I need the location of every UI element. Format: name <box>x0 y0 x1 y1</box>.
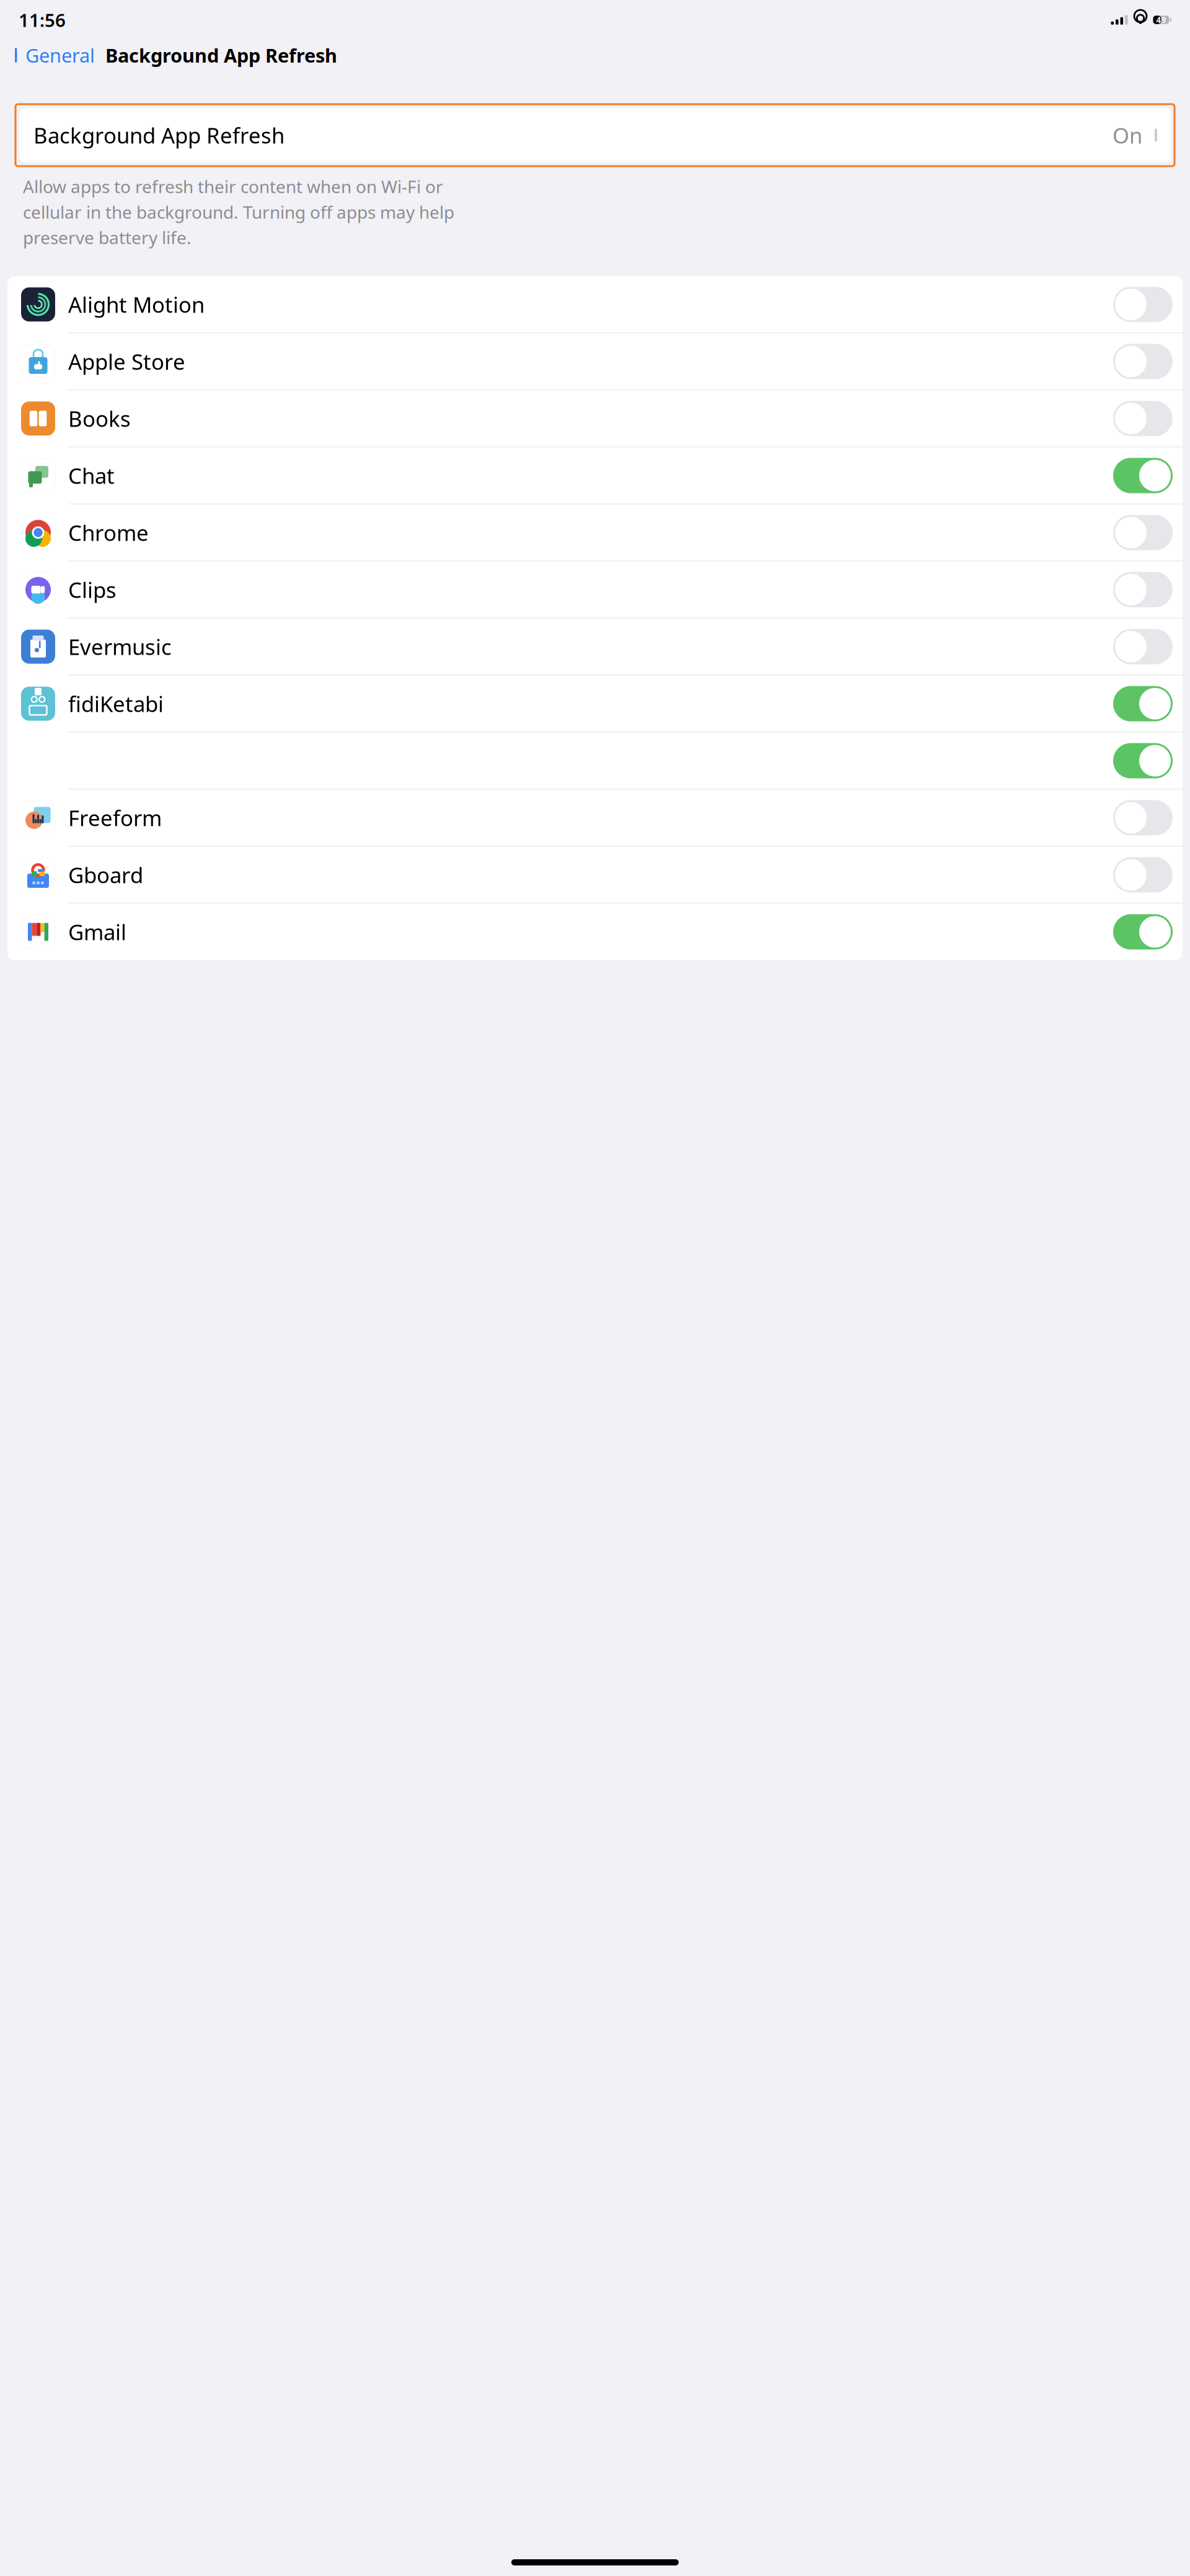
staticText: Freeform <box>68 803 162 832</box>
staticText: Evermusic <box>68 632 172 661</box>
staticText: Chrome <box>68 518 149 547</box>
button[interactable]: General <box>12 39 95 71</box>
button[interactable]: Disabled <box>1113 572 1173 607</box>
button[interactable]: Enabled <box>1113 686 1173 721</box>
staticText: General <box>25 43 95 68</box>
button[interactable]: fidiKetabi <box>7 675 1183 732</box>
button[interactable]: Disabled <box>1113 800 1173 835</box>
button[interactable]: Apple Store <box>7 333 1183 390</box>
staticText: Background App Refresh <box>33 121 284 149</box>
button[interactable]: Alight Motion <box>7 276 1183 333</box>
button[interactable]: Background App Refresh <box>15 104 1175 166</box>
button[interactable]: Enabled <box>1113 458 1173 493</box>
staticText: Clips <box>68 575 117 604</box>
staticText: Alight Motion <box>68 290 205 319</box>
button[interactable]: Disabled <box>1113 401 1173 436</box>
button[interactable]: Gboard <box>7 847 1183 903</box>
button[interactable]: Chrome <box>7 504 1183 561</box>
staticText: fidiKetabi <box>68 689 164 718</box>
staticText: Gmail <box>68 918 126 946</box>
staticText: Apple Store <box>68 347 185 376</box>
button[interactable]: Disabled <box>1113 287 1173 322</box>
staticText: Books <box>68 404 131 433</box>
staticText: cellular in the background. Turning off … <box>23 200 454 223</box>
staticText: 49 <box>1156 14 1166 25</box>
button[interactable]: Disabled <box>1113 857 1173 892</box>
button[interactable]: Chat <box>7 447 1183 504</box>
button[interactable] <box>7 733 1183 789</box>
staticText: On <box>1113 121 1142 149</box>
button[interactable]: Gmail <box>7 904 1183 960</box>
staticText: Gboard <box>68 861 143 889</box>
button[interactable]: Enabled <box>1113 914 1173 949</box>
button[interactable]: Clips <box>7 561 1183 618</box>
button[interactable]: Disabled <box>1113 515 1173 550</box>
button[interactable]: Books <box>7 390 1183 447</box>
button[interactable]: Enabled <box>1113 743 1173 778</box>
staticText: 11:56 <box>19 8 66 32</box>
staticText: preserve battery life. <box>23 226 192 249</box>
button[interactable]: Disabled <box>1113 344 1173 379</box>
button[interactable]: Freeform <box>7 790 1183 846</box>
staticText: Chat <box>68 461 115 490</box>
staticText: Background App Refresh <box>105 43 337 68</box>
button[interactable]: Evermusic <box>7 618 1183 675</box>
button[interactable]: Disabled <box>1113 629 1173 664</box>
staticText: Allow apps to refresh their content when… <box>23 175 443 198</box>
